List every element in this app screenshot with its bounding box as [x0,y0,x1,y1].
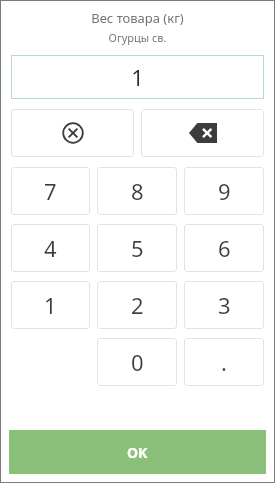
staticText: 5 [131,233,144,263]
staticText: 0 [131,347,144,377]
staticText: 3 [218,290,231,320]
button[interactable]: 1 [11,55,264,99]
button[interactable]: 9 [184,167,264,215]
button[interactable]: 3 [184,281,264,329]
staticText: 8 [131,176,144,206]
button[interactable]: 2 [97,281,177,329]
button[interactable]: Clear [11,109,134,157]
staticText: 2 [131,290,144,320]
button[interactable]: Backspace [141,109,264,157]
staticText: 7 [44,176,57,206]
button[interactable]: 6 [184,224,264,272]
staticText: Вес товара (кг) [0,9,275,27]
button[interactable]: 0 [97,338,177,386]
staticText: Огурцы св. [0,30,275,45]
button[interactable]: 5 [97,224,177,272]
staticText: OK [127,443,148,462]
button[interactable]: OK [9,430,266,474]
staticText: 9 [218,176,231,206]
button[interactable]: 4 [11,224,90,272]
button[interactable]: 1 [11,281,90,329]
button[interactable]: . [184,338,264,386]
button[interactable]: 7 [11,167,90,215]
staticText: 4 [44,233,57,263]
staticText: 1 [131,62,144,92]
staticText: 6 [218,233,231,263]
staticText: . [221,347,227,377]
staticText: 1 [44,290,57,320]
button[interactable]: 8 [97,167,177,215]
